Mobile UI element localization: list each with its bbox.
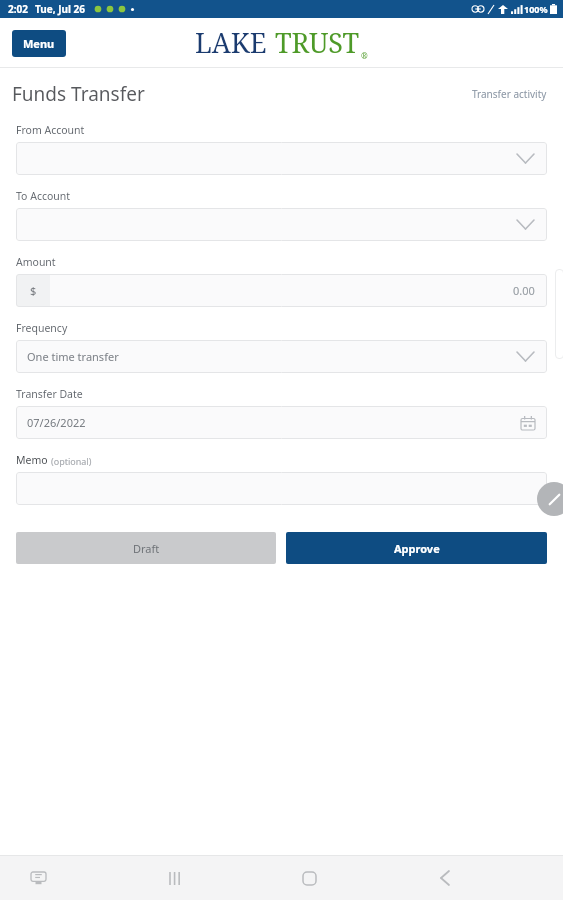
staticText: (optional) (51, 455, 92, 467)
staticText: Amount (16, 255, 56, 269)
staticText: ® (361, 50, 368, 61)
button[interactable]: Home (291, 860, 327, 896)
button[interactable]: Menu (12, 30, 66, 57)
button[interactable]: One time transfer (16, 340, 547, 373)
staticText: Menu (23, 36, 55, 51)
other: Open dropdown (517, 352, 534, 361)
staticText: Tue, Jul 26 (35, 2, 86, 16)
button[interactable]: Hide keyboard (20, 860, 56, 896)
button[interactable]: Transfer activity (468, 83, 551, 105)
staticText: To Account (16, 189, 71, 203)
button[interactable]: Draft (16, 532, 276, 564)
staticText: Transfer Date (16, 387, 83, 401)
staticText: Funds Transfer (12, 81, 145, 107)
staticText: TRUST (275, 24, 360, 61)
staticText: 0.00 (513, 283, 535, 298)
staticText: Memo (16, 453, 48, 467)
button[interactable]: Open dropdown (16, 208, 547, 241)
staticText: Transfer activity (472, 87, 547, 101)
button[interactable]: 07/26/2022 (16, 406, 547, 439)
button[interactable]: Open dropdown (16, 142, 547, 175)
staticText: Draft (133, 541, 160, 556)
other: Pick date (521, 416, 535, 430)
staticText: Frequency (16, 321, 68, 335)
button[interactable]: Edit (537, 482, 563, 516)
staticText: LAKE (195, 24, 267, 61)
staticText: 07/26/2022 (27, 415, 86, 430)
other: Open dropdown (517, 220, 534, 229)
button[interactable]: Approve (286, 532, 547, 564)
button[interactable] (16, 472, 547, 505)
button[interactable]: Back (427, 860, 463, 896)
staticText: 100% (524, 3, 548, 15)
other: Open dropdown (517, 154, 534, 163)
staticText: $ (30, 283, 37, 298)
staticText: 2:02 (8, 2, 28, 16)
staticText: From Account (16, 123, 85, 137)
staticText: Approve (394, 541, 440, 556)
button[interactable]: Recent apps (156, 860, 192, 896)
staticText: One time transfer (27, 349, 119, 364)
button[interactable]: $ (16, 274, 547, 307)
